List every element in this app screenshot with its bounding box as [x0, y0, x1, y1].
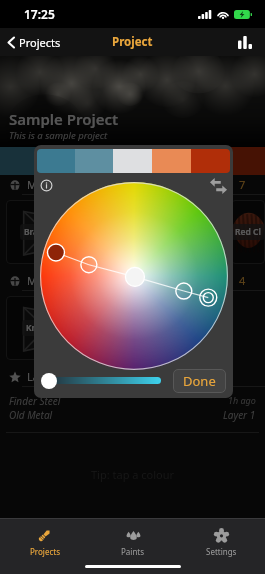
staticText: Projects [30, 546, 60, 557]
staticText: Project [112, 34, 153, 50]
staticText: Tip: tap a colour [91, 467, 175, 482]
staticText: 4 [239, 273, 246, 288]
staticText: Red Cloak [235, 226, 261, 238]
button[interactable]: Settings [177, 519, 265, 565]
staticText: 1h ago [228, 394, 256, 406]
button[interactable] [191, 149, 230, 173]
button[interactable]: Red Cloak [231, 200, 265, 264]
staticText: 7 [239, 177, 246, 192]
staticText: Elf [185, 322, 196, 334]
staticText: Layer 1 [223, 408, 256, 422]
button[interactable] [37, 149, 75, 173]
staticText: Projects [19, 35, 61, 50]
staticText: Materials [27, 177, 75, 192]
button[interactable]: Knight [6, 296, 74, 360]
staticText: Cape [180, 226, 201, 238]
staticText: 17:25 [24, 6, 55, 22]
button[interactable]: Statistics [225, 28, 265, 56]
staticText: Orc [108, 322, 123, 334]
button[interactable]: Miniatures [0, 271, 265, 290]
staticText: Old Metal [9, 408, 53, 422]
staticText: Knight [26, 322, 54, 334]
button[interactable]: Last Used [0, 367, 265, 386]
staticText: Miniatures [27, 273, 83, 288]
button[interactable]: Info [39, 178, 54, 193]
button[interactable]: Projects [0, 28, 71, 56]
staticText: Shield [102, 226, 128, 238]
staticText: Sample Project [9, 109, 119, 129]
button[interactable]: Paints [89, 519, 177, 565]
button[interactable]: Materials [0, 175, 265, 194]
button[interactable]: Elf [156, 296, 224, 360]
button[interactable]: Projects [0, 519, 89, 565]
button[interactable]: Cape [156, 200, 224, 264]
staticText: Last Used [27, 369, 78, 384]
staticText: Bracers [24, 226, 56, 238]
button[interactable]: Swap colours [209, 176, 228, 195]
staticText: Paints [121, 546, 145, 557]
staticText: Finder Steel [9, 394, 61, 408]
button[interactable]: Brightness [41, 372, 163, 389]
staticText: Done [183, 372, 216, 390]
button[interactable]: Bracers [6, 200, 74, 264]
staticText: This is a sample project [9, 129, 108, 142]
button[interactable]: Done [173, 369, 226, 393]
button[interactable]: Orc [81, 296, 149, 360]
button[interactable]: Shield [81, 200, 149, 264]
staticText: Settings [206, 546, 237, 557]
